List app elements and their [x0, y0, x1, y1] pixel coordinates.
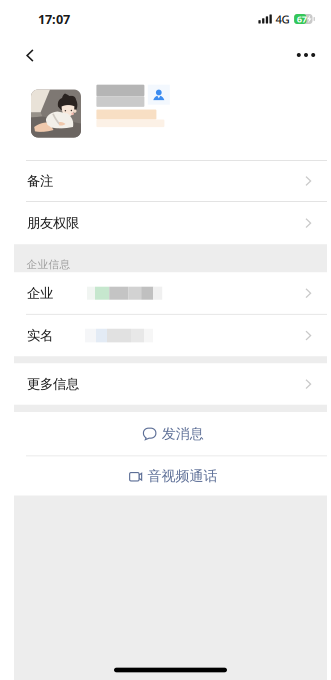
- button[interactable]: 朋友权限: [14, 202, 327, 244]
- staticText: 备注: [27, 173, 53, 189]
- staticText: 实名: [27, 327, 53, 344]
- button[interactable]: More options: [283, 38, 327, 76]
- button[interactable]: Back: [14, 38, 58, 76]
- staticText: 更多信息: [27, 376, 79, 392]
- staticText: 音视频通话: [147, 467, 217, 485]
- button[interactable]: 企业: [14, 272, 327, 314]
- staticText: 17:07: [38, 10, 70, 28]
- staticText: 67: [297, 13, 307, 25]
- staticText: 朋友权限: [27, 215, 79, 231]
- staticText: 4G: [275, 11, 289, 27]
- button[interactable]: 更多信息: [14, 363, 327, 405]
- button[interactable]: [14, 76, 327, 160]
- staticText: 企业: [27, 285, 53, 302]
- staticText: 企业信息: [26, 258, 70, 271]
- staticText: 发消息: [162, 425, 204, 442]
- button[interactable]: 发消息: [14, 412, 327, 455]
- button[interactable]: 实名: [14, 315, 327, 356]
- button[interactable]: 音视频通话: [14, 456, 327, 495]
- button[interactable]: 备注: [14, 161, 327, 201]
